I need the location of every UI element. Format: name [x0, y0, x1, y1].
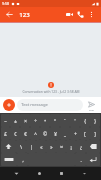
button[interactable]: Add attachment — [3, 99, 15, 111]
button[interactable]: { — [80, 114, 90, 127]
staticText: _ — [64, 131, 66, 137]
button[interactable]: Backspace — [86, 140, 100, 153]
staticText: Text message — [21, 102, 48, 108]
button[interactable]: , — [17, 153, 28, 166]
button[interactable]: ¿ — [76, 140, 86, 153]
staticText: ~ — [4, 118, 7, 124]
staticText: £ — [4, 131, 7, 137]
staticText: ¢ — [14, 131, 17, 137]
button[interactable]: ] — [90, 127, 100, 140]
button[interactable]: £ — [1, 127, 10, 140]
button[interactable]: ÷ — [30, 114, 40, 127]
staticText: • — [44, 118, 46, 124]
button[interactable]: ± — [10, 114, 20, 127]
staticText: . — [80, 157, 82, 163]
button[interactable]: Hide keyboard — [78, 167, 91, 180]
button[interactable]: . — [75, 153, 86, 166]
staticText: ± — [14, 118, 17, 124]
staticText: } — [94, 118, 96, 124]
staticText: © — [43, 131, 47, 137]
staticText: \ — [20, 144, 22, 150]
staticText: 9:58 — [2, 1, 9, 6]
button[interactable]: ' — [70, 114, 80, 127]
staticText: SMS — [89, 108, 94, 111]
button[interactable]: [ — [80, 127, 90, 140]
button[interactable]: Send — [85, 99, 98, 112]
button[interactable]: • — [40, 114, 50, 127]
button[interactable]: + — [70, 127, 80, 140]
button[interactable]: ¥ — [50, 127, 60, 140]
button[interactable]: \ — [16, 140, 26, 153]
button[interactable]: _ — [60, 127, 70, 140]
button[interactable]: Back — [4, 9, 15, 20]
button[interactable]: Enter — [86, 153, 100, 166]
button[interactable]: More options — [86, 9, 97, 20]
staticText: ÷ — [34, 118, 37, 124]
button[interactable]: Home — [33, 167, 46, 180]
staticText: , — [22, 157, 24, 163]
button[interactable]: ^ — [30, 127, 40, 140]
staticText: ¿ — [80, 144, 82, 150]
staticText: ] — [94, 131, 96, 137]
staticText: + — [74, 131, 77, 137]
button[interactable]: ° — [50, 114, 60, 127]
button[interactable]: Video call — [64, 9, 75, 20]
button[interactable]: Switch to letters — [1, 153, 17, 166]
button[interactable]: Shift — [1, 140, 16, 153]
staticText: ¥ — [54, 131, 57, 137]
button[interactable]: | — [26, 140, 36, 153]
button[interactable]: × — [20, 114, 30, 127]
staticText: { — [84, 118, 86, 124]
staticText: × — [24, 118, 27, 124]
button[interactable]: Recent apps — [55, 167, 68, 180]
button[interactable]: ~ — [1, 114, 10, 127]
staticText: € — [24, 131, 27, 137]
button[interactable]: } — [90, 114, 100, 127]
button[interactable]: € — [20, 127, 30, 140]
staticText: « — [40, 144, 43, 150]
staticText: [ — [84, 131, 86, 137]
button[interactable]: Text message — [17, 99, 83, 111]
button[interactable]: ¢ — [10, 127, 20, 140]
button[interactable]: ` — [60, 114, 70, 127]
staticText: ¡ — [70, 144, 72, 150]
button[interactable]: ¡ — [66, 140, 76, 153]
staticText: ' — [74, 118, 76, 124]
staticText: » — [50, 144, 53, 150]
button[interactable]: » — [46, 140, 56, 153]
staticText: ^ — [34, 131, 37, 137]
button[interactable]: Back — [10, 167, 23, 180]
button[interactable]: Call — [75, 9, 86, 20]
button[interactable]: ¤ — [56, 140, 66, 153]
button[interactable]: « — [36, 140, 46, 153]
staticText: ¤ — [60, 144, 63, 150]
staticText: ` — [64, 118, 66, 124]
staticText: Conversation with 123 - Jul 2 3:58 AM — [22, 89, 80, 93]
staticText: | — [30, 144, 33, 150]
staticText: 123 — [19, 11, 30, 19]
staticText: ° — [54, 118, 56, 124]
button[interactable]: © — [40, 127, 50, 140]
